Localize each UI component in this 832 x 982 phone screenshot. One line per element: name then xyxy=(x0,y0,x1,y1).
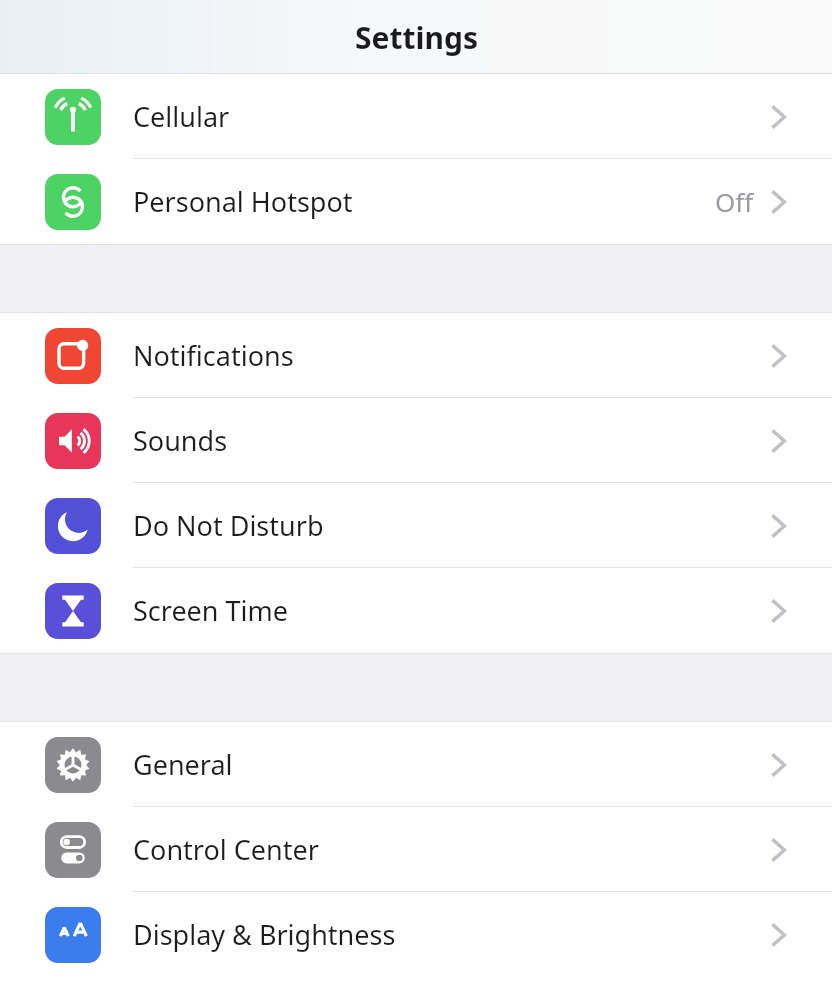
button[interactable]: Display & Brightness xyxy=(0,892,832,977)
staticText: Display & Brightness xyxy=(133,916,396,953)
staticText: Cellular xyxy=(133,98,230,135)
button[interactable]: Personal Hotspot xyxy=(0,159,832,244)
staticText: Screen Time xyxy=(133,592,289,629)
staticText: Do Not Disturb xyxy=(133,507,324,544)
staticText: Notifications xyxy=(133,337,294,374)
staticText: Off xyxy=(715,184,754,219)
staticText: Sounds xyxy=(133,422,228,459)
staticText: Settings xyxy=(355,17,478,58)
button[interactable]: Do Not Disturb xyxy=(0,483,832,568)
button[interactable]: Notifications xyxy=(0,313,832,398)
button[interactable]: Control Center xyxy=(0,807,832,892)
staticText: Control Center xyxy=(133,831,319,868)
button[interactable]: General xyxy=(0,722,832,807)
staticText: General xyxy=(133,746,233,783)
button[interactable]: Sounds xyxy=(0,398,832,483)
staticText: Personal Hotspot xyxy=(133,183,353,220)
button[interactable]: Cellular xyxy=(0,74,832,159)
button[interactable]: Screen Time xyxy=(0,568,832,653)
